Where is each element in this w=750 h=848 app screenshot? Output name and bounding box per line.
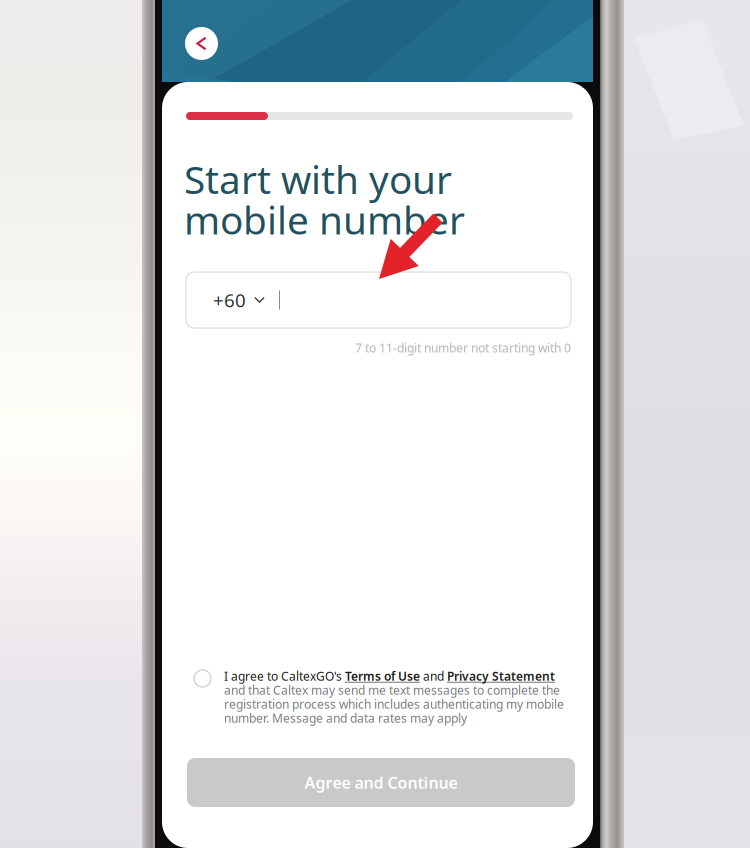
staticText: number. Message and data rates may apply (224, 710, 467, 726)
staticText: registration process which includes auth… (224, 696, 564, 712)
button[interactable]: Back (185, 27, 218, 60)
staticText: 7 to 11-digit number not starting with 0 (355, 340, 571, 356)
staticText: mobile number (184, 194, 465, 245)
staticText: Agree and Continue (304, 772, 457, 793)
staticText: I agree to CaltexGO's Terms of Use and P… (224, 668, 555, 684)
button[interactable]: Agree to terms (194, 669, 224, 687)
staticText: and that Caltex may send me text message… (224, 682, 560, 698)
staticText: Start with your (184, 153, 452, 205)
button[interactable]: Agree and Continue (187, 758, 575, 807)
staticText: +60 (213, 288, 246, 312)
